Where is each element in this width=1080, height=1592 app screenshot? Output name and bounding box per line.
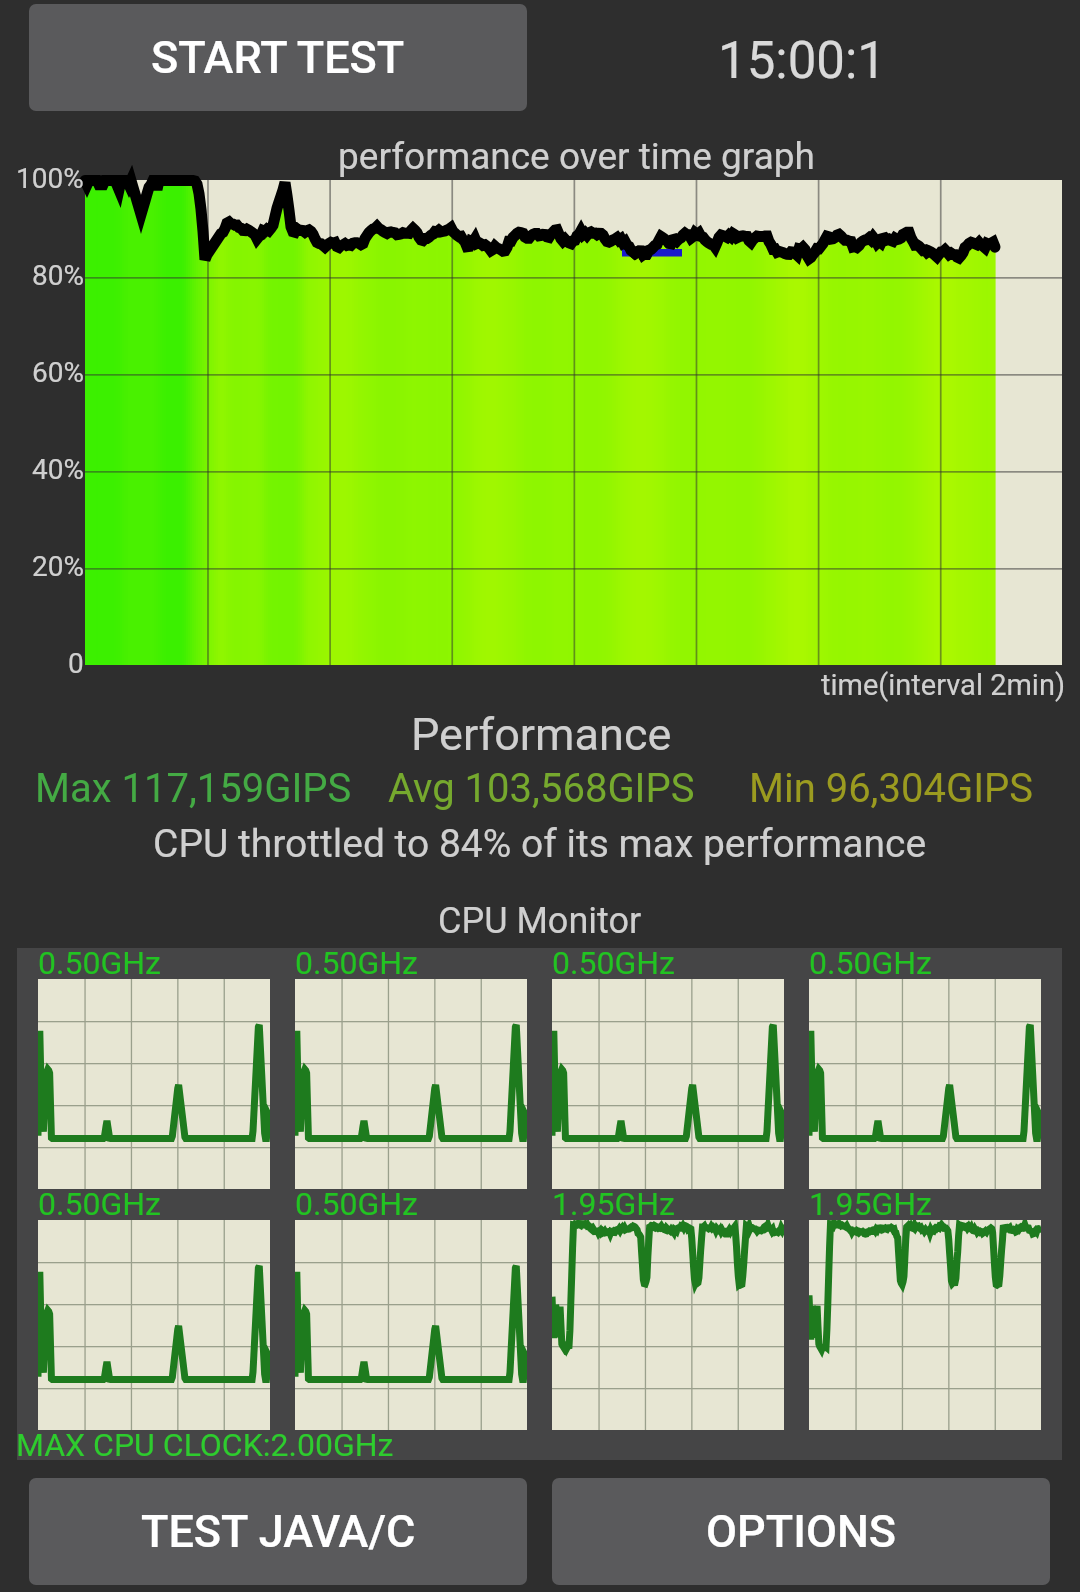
staticText: 0.50GHz [295, 1185, 418, 1223]
staticText: OPTIONS [706, 1505, 897, 1558]
staticText: Min 96,304GIPS [749, 765, 1034, 812]
staticText: 0.50GHz [295, 944, 418, 982]
staticText: TEST JAVA/C [141, 1505, 416, 1558]
staticText: 80% [32, 259, 84, 292]
staticText: 0.50GHz [38, 944, 161, 982]
staticText: Performance [411, 708, 672, 761]
button[interactable]: START TEST [29, 4, 527, 111]
button[interactable]: TEST JAVA/C [29, 1478, 527, 1585]
staticText: 100% [16, 162, 84, 195]
staticText: Avg 103,568GIPS [388, 765, 695, 812]
staticText: 40% [32, 453, 84, 486]
staticText: CPU throttled to 84% of its max performa… [153, 821, 927, 867]
staticText: 0.50GHz [38, 1185, 161, 1223]
staticText: 20% [32, 550, 84, 583]
staticText: 1.95GHz [809, 1185, 932, 1223]
staticText: 15:00:1 [718, 31, 887, 91]
staticText: 60% [32, 356, 84, 389]
staticText: Max 117,159GIPS [35, 765, 352, 812]
staticText: 0.50GHz [552, 944, 675, 982]
staticText: START TEST [151, 31, 405, 84]
staticText: performance over time graph [338, 135, 815, 178]
staticText: 0 [68, 647, 84, 680]
staticText: 1.95GHz [552, 1185, 675, 1223]
button[interactable]: OPTIONS [552, 1478, 1050, 1585]
staticText: 0.50GHz [809, 944, 932, 982]
staticText: CPU Monitor [438, 900, 642, 942]
staticText: MAX CPU CLOCK:2.00GHz [16, 1426, 394, 1464]
staticText: time(interval 2min) [821, 668, 1066, 702]
